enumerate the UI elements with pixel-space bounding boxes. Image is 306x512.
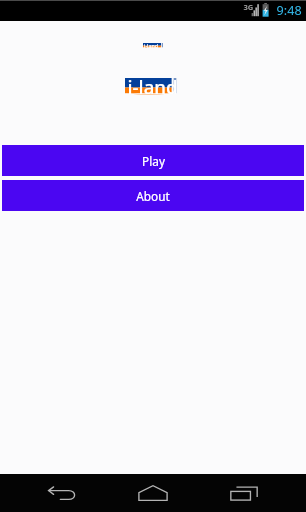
staticText: About	[136, 188, 170, 204]
button[interactable]: Recent apps	[215, 474, 273, 512]
button[interactable]: Play	[2, 145, 304, 176]
staticText: Play	[142, 153, 165, 169]
button[interactable]: Back	[33, 474, 91, 512]
button[interactable]: About	[2, 180, 304, 211]
button[interactable]: Home	[124, 474, 182, 512]
